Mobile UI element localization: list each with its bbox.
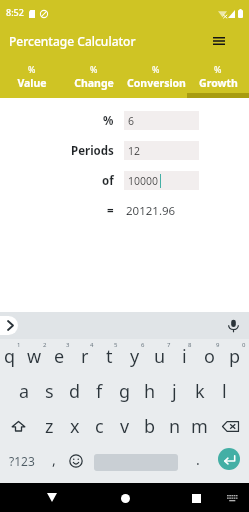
button[interactable]: w — [24, 339, 49, 374]
staticText: j — [172, 379, 177, 404]
staticText: 5 — [114, 341, 118, 349]
staticText: Percentage Calculator — [9, 33, 136, 49]
staticText: y — [130, 344, 140, 369]
staticText: 6 — [128, 114, 135, 128]
button[interactable]: d — [62, 374, 87, 409]
staticText: 3 — [66, 341, 70, 349]
button[interactable]: p — [224, 339, 249, 374]
staticText: o — [204, 344, 215, 369]
staticText: i — [182, 344, 187, 369]
staticText: , — [52, 450, 56, 469]
staticText: u — [154, 344, 166, 369]
staticText: 4 — [90, 341, 94, 349]
staticText: x — [70, 414, 80, 439]
staticText: r — [81, 344, 89, 369]
staticText: l — [222, 379, 227, 404]
button[interactable]: . — [188, 444, 208, 478]
button[interactable]: i — [174, 339, 199, 374]
staticText: % — [103, 113, 114, 129]
button[interactable]: Home — [101, 483, 149, 512]
button[interactable]: Shift — [0, 409, 37, 444]
button[interactable]: x — [62, 409, 87, 444]
staticText: d — [69, 379, 81, 404]
button[interactable]: Emoji — [65, 444, 87, 478]
button[interactable]: y — [124, 339, 149, 374]
staticText: . — [196, 450, 200, 469]
button[interactable]: q — [0, 339, 24, 374]
button[interactable]: m — [187, 409, 212, 444]
staticText: 9 — [216, 341, 220, 349]
staticText: Periods — [71, 143, 114, 159]
button[interactable]: a — [12, 374, 37, 409]
button[interactable]: % — [0, 60, 63, 98]
button[interactable]: f — [87, 374, 112, 409]
button[interactable]: Show toolbar — [0, 316, 18, 335]
button[interactable]: Menu — [206, 28, 232, 54]
button[interactable]: n — [162, 409, 187, 444]
staticText: 8 — [188, 341, 192, 349]
button[interactable]: Backspace — [212, 409, 249, 444]
button[interactable]: s — [37, 374, 62, 409]
staticText: % — [90, 63, 98, 75]
button[interactable]: e — [49, 339, 74, 374]
staticText: f — [96, 379, 103, 404]
staticText: 0 — [242, 341, 246, 349]
button[interactable]: u — [149, 339, 174, 374]
button[interactable]: b — [137, 409, 162, 444]
staticText: ?123 — [9, 453, 35, 469]
button[interactable]: Voice input — [224, 317, 242, 335]
button[interactable]: % — [63, 60, 125, 98]
button[interactable]: % — [125, 60, 187, 98]
button[interactable]: k — [187, 374, 212, 409]
staticText: m — [191, 414, 208, 439]
button[interactable]: l — [212, 374, 237, 409]
button[interactable]: t — [99, 339, 124, 374]
staticText: c — [95, 414, 104, 439]
staticText: h — [144, 379, 156, 404]
staticText: Value — [17, 76, 47, 90]
button[interactable]: r — [74, 339, 99, 374]
staticText: Conversion — [127, 76, 186, 90]
button[interactable]: 10000 — [124, 171, 199, 190]
staticText: 7 — [167, 341, 171, 349]
button[interactable]: c — [87, 409, 112, 444]
staticText: % — [152, 63, 160, 75]
staticText: e — [54, 344, 65, 369]
staticText: 12 — [128, 144, 141, 158]
staticText: 10000 — [128, 174, 159, 188]
staticText: s — [45, 379, 54, 404]
staticText: 8:52 — [6, 6, 24, 18]
button[interactable]: Back — [28, 483, 76, 512]
staticText: Growth — [199, 76, 238, 90]
button[interactable]: , — [43, 444, 65, 478]
staticText: a — [19, 379, 30, 404]
button[interactable]: ?123 — [0, 444, 43, 478]
staticText: % — [28, 63, 36, 75]
button[interactable]: j — [162, 374, 187, 409]
staticText: t — [106, 344, 113, 369]
staticText: k — [195, 379, 205, 404]
staticText: p — [229, 344, 241, 369]
button[interactable]: 12 — [124, 141, 199, 160]
staticText: = — [107, 203, 114, 219]
button[interactable]: o — [199, 339, 224, 374]
staticText: n — [169, 414, 181, 439]
button[interactable]: Enter — [218, 448, 240, 470]
staticText: b — [144, 414, 156, 439]
staticText: % — [214, 63, 222, 75]
button[interactable]: h — [137, 374, 162, 409]
staticText: q — [4, 344, 16, 369]
staticText: w — [27, 344, 42, 369]
button[interactable]: v — [112, 409, 137, 444]
button[interactable]: % — [187, 60, 249, 98]
button[interactable]: 6 — [124, 111, 199, 130]
staticText: v — [120, 414, 130, 439]
button[interactable]: Switch keyboard — [221, 487, 243, 509]
button[interactable]: z — [37, 409, 62, 444]
button[interactable]: g — [112, 374, 137, 409]
button[interactable]: Recents — [172, 483, 220, 512]
staticText: 1 — [17, 341, 21, 349]
staticText: g — [119, 379, 131, 404]
staticText: 20121.96 — [126, 203, 176, 219]
